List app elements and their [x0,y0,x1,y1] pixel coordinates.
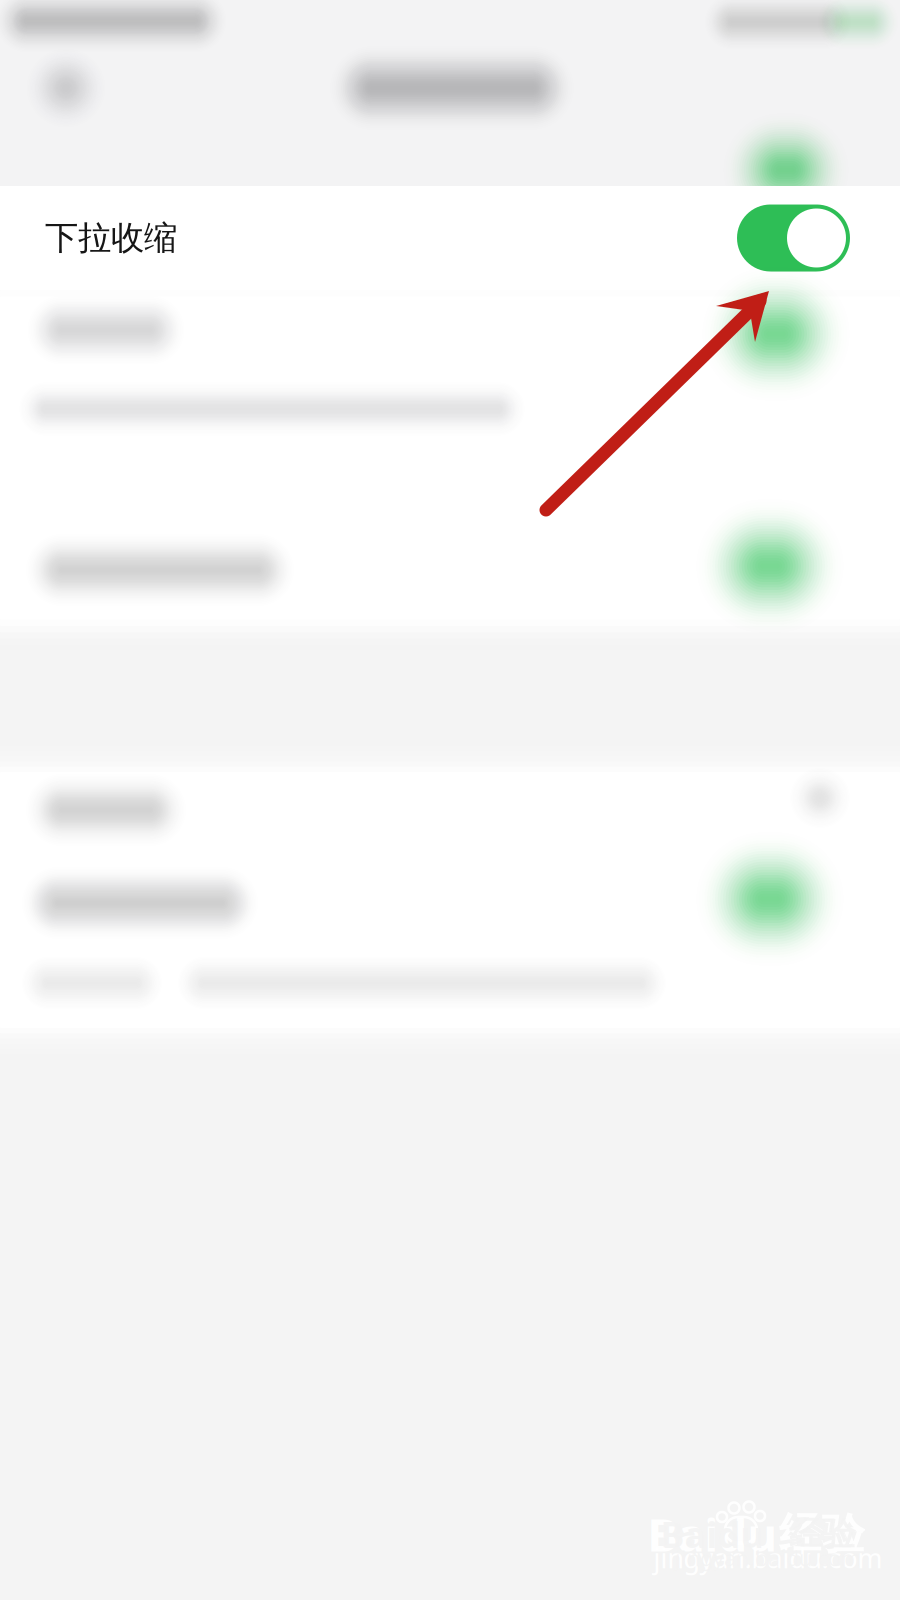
button[interactable] [0,855,900,1025]
staticText: jingyan.baidu.com [653,1540,882,1576]
staticText: 下拉收缩 [45,217,177,258]
staticText: 经验 [789,1513,855,1554]
button[interactable] [0,753,900,863]
staticText: jingyan.baidu.com [675,1544,861,1572]
button[interactable]: 返回 [18,40,114,136]
staticText: Baidu [660,1510,763,1558]
button[interactable]: 下拉收缩 [0,186,900,290]
button[interactable] [0,498,900,638]
staticText: 经验 [779,1508,865,1560]
button[interactable] [0,290,900,450]
staticText: Baidu [647,1504,776,1564]
